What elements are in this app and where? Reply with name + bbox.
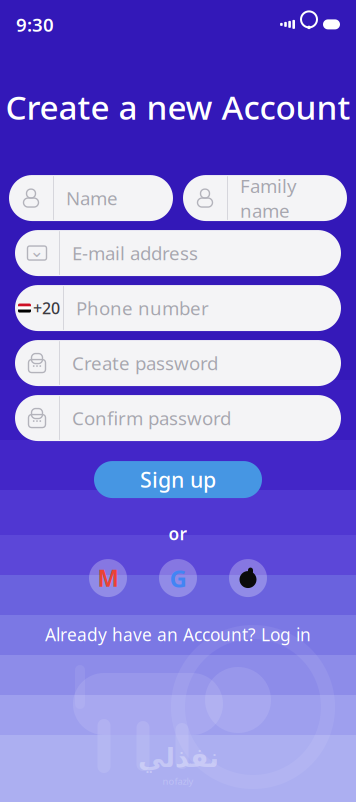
staticText: Family name — [240, 173, 297, 223]
staticText: Confirm password — [72, 406, 231, 430]
staticText: Create password — [72, 351, 218, 375]
button[interactable]: +20 — [15, 285, 341, 331]
staticText: نفذلي — [137, 743, 218, 773]
button[interactable]: Sign up — [94, 461, 262, 498]
button[interactable]: Sign up with Google — [159, 559, 197, 597]
button[interactable]: Already have an Account? Log in — [35, 619, 321, 650]
staticText: +20 — [33, 297, 60, 319]
staticText: ⌄ — [29, 241, 44, 261]
staticText: Create a new Account — [5, 85, 350, 129]
button[interactable]: Sign up with Gmail — [89, 559, 127, 597]
staticText: or — [168, 522, 187, 545]
staticText: E-mail address — [72, 241, 198, 265]
staticText: Name — [66, 186, 118, 210]
staticText: nofazly — [162, 775, 193, 787]
staticText: 9:30 — [16, 12, 54, 37]
button[interactable]: Confirm password — [15, 395, 341, 441]
button[interactable]: Name — [9, 175, 173, 221]
button[interactable]: ⌄ — [15, 230, 341, 276]
staticText: G — [169, 562, 186, 594]
staticText: Sign up — [140, 465, 216, 494]
staticText: Phone number — [76, 296, 209, 320]
button[interactable]: Create password — [15, 340, 341, 386]
staticText: M — [97, 563, 118, 593]
button[interactable]: Sign up with Apple — [229, 559, 267, 597]
button[interactable]: Family name — [183, 175, 347, 221]
staticText: Already have an Account? Log in — [45, 623, 311, 646]
